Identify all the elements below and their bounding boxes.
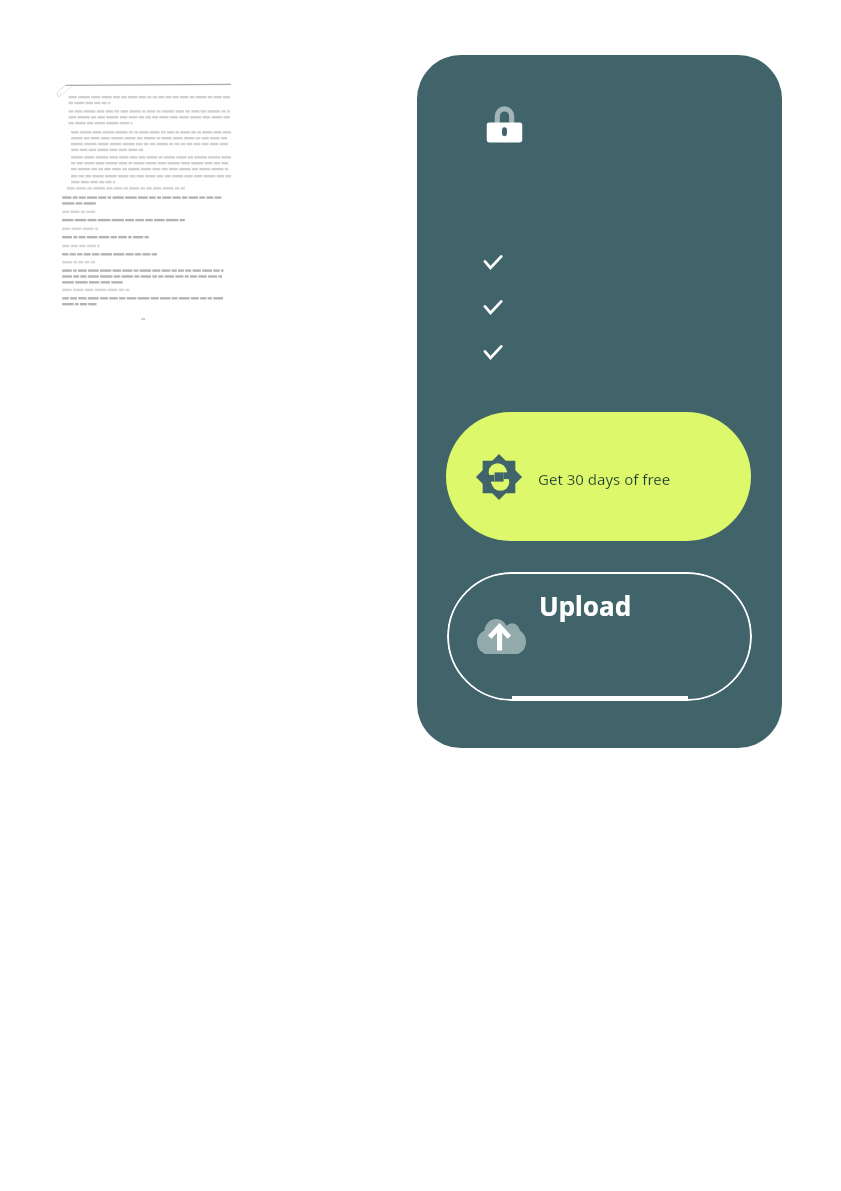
button[interactable]: Upload [447,572,752,701]
staticText: Get 30 days of free [538,469,671,489]
button[interactable]: Document page preview [56,80,232,318]
staticText: Upload [539,588,632,623]
button[interactable]: Get 30 days of free [446,412,751,541]
other: Locked [482,103,527,148]
